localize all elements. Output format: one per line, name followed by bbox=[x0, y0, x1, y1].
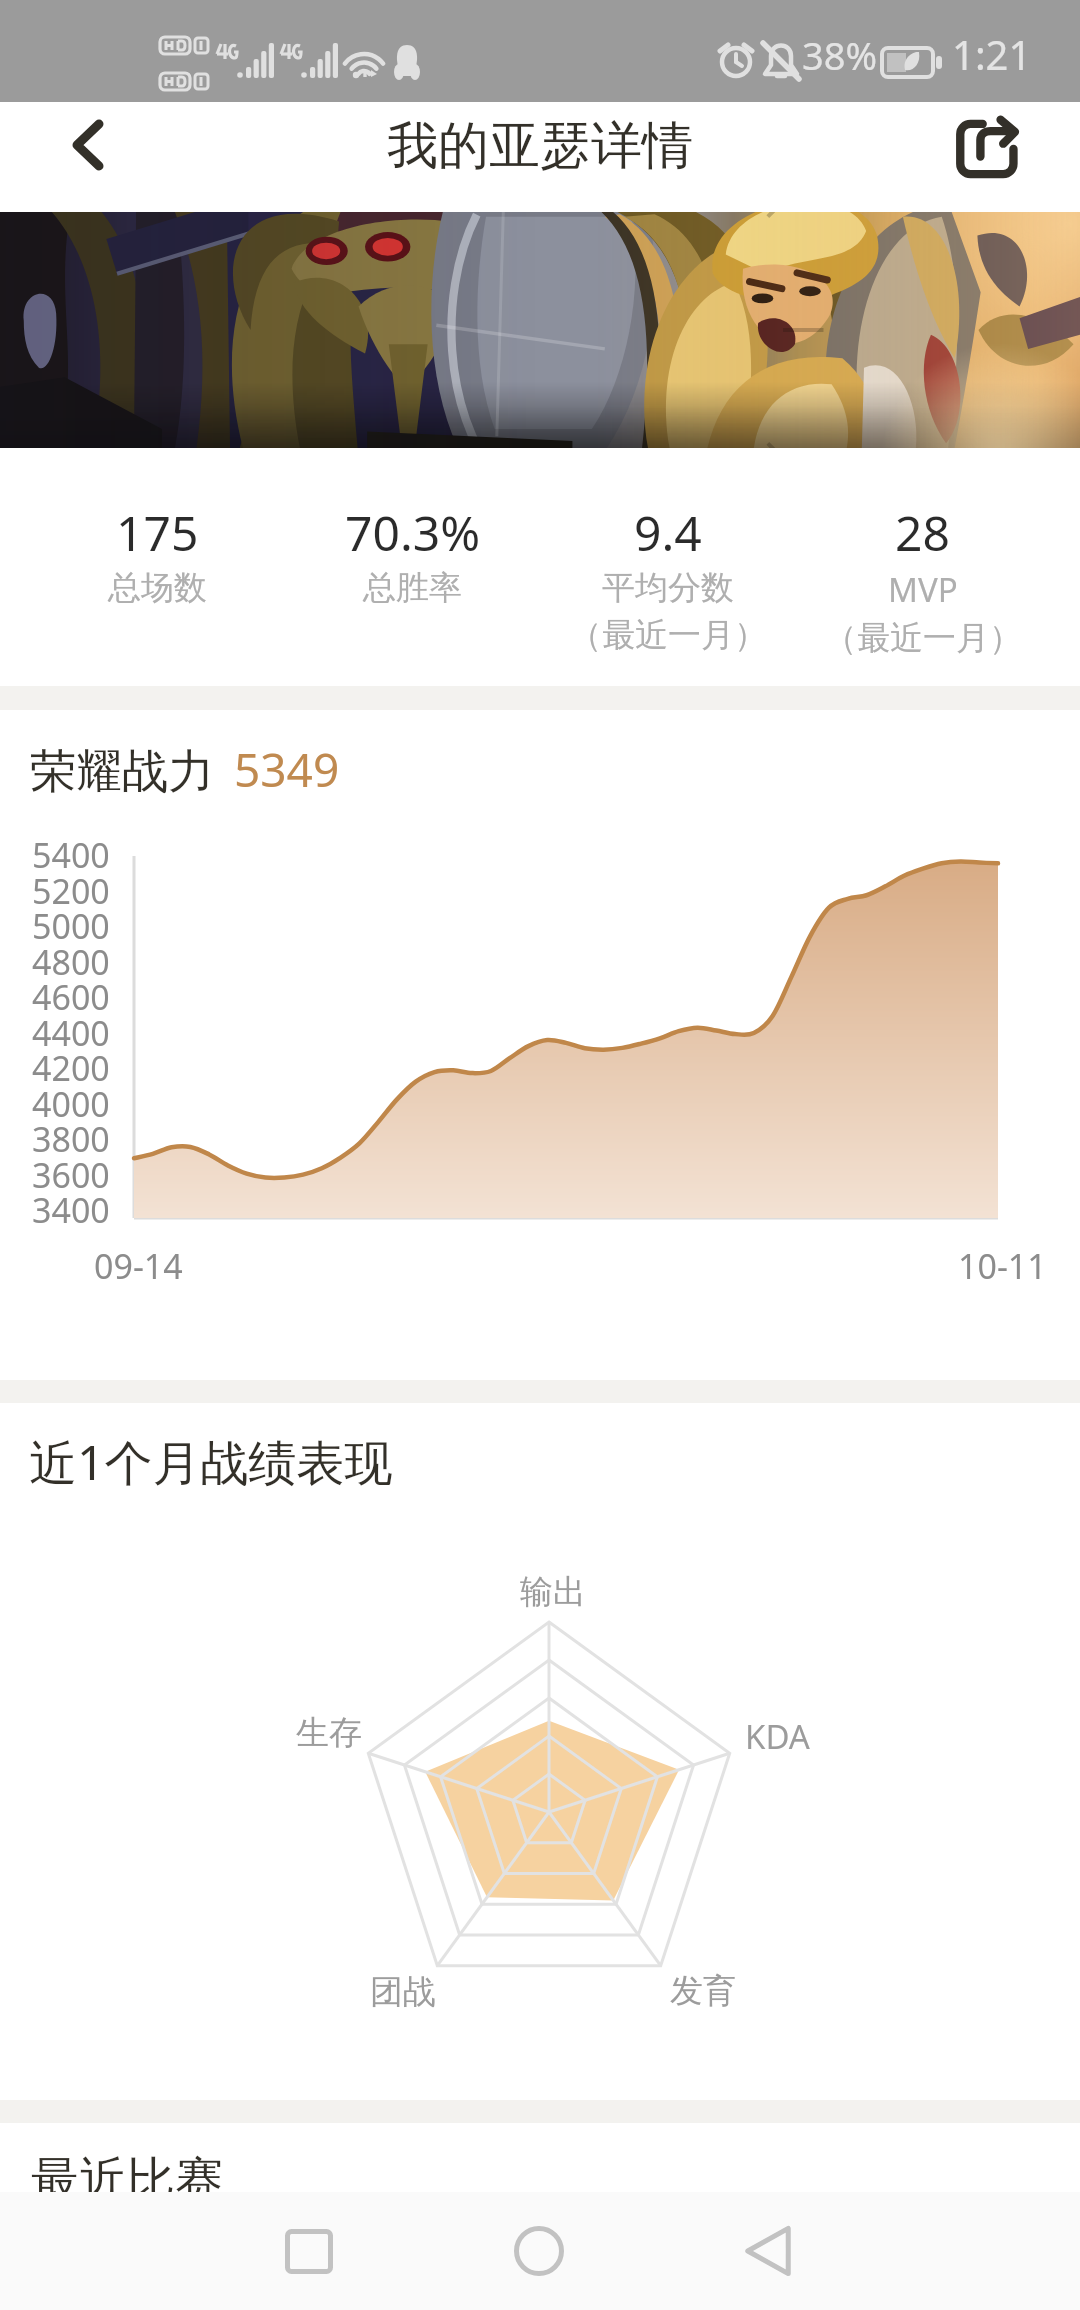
staticText: 3400 bbox=[32, 1187, 110, 1233]
staticText: 5349 bbox=[234, 738, 340, 801]
staticText: 09-14 bbox=[94, 1243, 183, 1289]
staticText: 团战 bbox=[370, 1971, 436, 2013]
staticText: KDA bbox=[745, 1714, 810, 1759]
button[interactable]: Home bbox=[464, 2192, 614, 2310]
button[interactable]: Share bbox=[920, 91, 1056, 201]
staticText: 38% bbox=[802, 29, 878, 81]
staticText: 近1个月战绩表现 bbox=[29, 1429, 393, 1495]
staticText: 10-11 bbox=[958, 1243, 1047, 1289]
staticText: 荣耀战力 bbox=[30, 743, 214, 801]
staticText: 4000 bbox=[32, 1081, 110, 1127]
staticText: 总场数 bbox=[108, 567, 207, 609]
staticText: 总胜率 bbox=[363, 567, 462, 609]
staticText: 输出 bbox=[520, 1571, 586, 1613]
staticText: 9.4 bbox=[634, 500, 702, 565]
staticText: 3600 bbox=[32, 1152, 110, 1198]
staticText: 70.3% bbox=[345, 500, 481, 565]
staticText: 5200 bbox=[32, 868, 110, 914]
staticText: 5000 bbox=[32, 903, 110, 949]
staticText: 3800 bbox=[32, 1116, 110, 1162]
staticText: 175 bbox=[116, 500, 199, 565]
staticText: （最近一月） bbox=[824, 617, 1022, 659]
staticText: 最近比赛 bbox=[31, 2150, 223, 2210]
staticText: 1:21 bbox=[952, 27, 1032, 81]
staticText: 平均分数 bbox=[602, 567, 734, 609]
staticText: 4800 bbox=[32, 939, 110, 985]
staticText: 生存 bbox=[296, 1712, 362, 1754]
staticText: 4400 bbox=[32, 1010, 110, 1056]
staticText: （最近一月） bbox=[569, 614, 767, 656]
staticText: 28 bbox=[895, 500, 950, 565]
button[interactable]: Back bbox=[20, 90, 156, 200]
staticText: 我的亚瑟详情 bbox=[387, 114, 693, 178]
staticText: 4200 bbox=[32, 1045, 110, 1091]
staticText: 5400 bbox=[32, 832, 110, 878]
staticText: 4600 bbox=[32, 974, 110, 1020]
staticText: 发育 bbox=[670, 1970, 736, 2012]
button[interactable]: Back bbox=[693, 2192, 843, 2310]
button[interactable]: Recent apps bbox=[234, 2192, 384, 2310]
staticText: MVP bbox=[888, 567, 958, 612]
